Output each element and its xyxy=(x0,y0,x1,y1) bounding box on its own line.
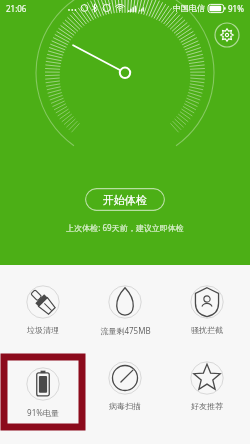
button[interactable]: 病毒扫描 xyxy=(86,357,164,415)
staticText: 21:06 xyxy=(6,3,27,14)
staticText: 垃圾清理 xyxy=(27,325,59,335)
button[interactable]: 好友推荐 xyxy=(168,357,246,415)
staticText: 开始体检 xyxy=(103,193,147,207)
button[interactable]: 垃圾清理 xyxy=(4,281,82,339)
button[interactable]: Settings xyxy=(214,22,240,48)
staticText: 中国电信 xyxy=(173,3,205,13)
staticText: 骚扰拦截 xyxy=(191,325,223,335)
staticText: 好友推荐 xyxy=(191,401,223,411)
staticText: 91%电量 xyxy=(27,407,59,418)
button[interactable]: 开始体检 xyxy=(85,188,165,211)
staticText: 病毒扫描 xyxy=(109,401,141,411)
staticText: 91% xyxy=(228,3,244,14)
button[interactable]: 骚扰拦截 xyxy=(168,281,246,339)
button[interactable]: 流量剩475MB xyxy=(86,281,164,340)
button[interactable]: 91%电量 xyxy=(4,363,82,422)
staticText: 上次体检: 69天前，建议立即体检 xyxy=(66,222,184,233)
staticText: 流量剩475MB xyxy=(100,325,151,336)
